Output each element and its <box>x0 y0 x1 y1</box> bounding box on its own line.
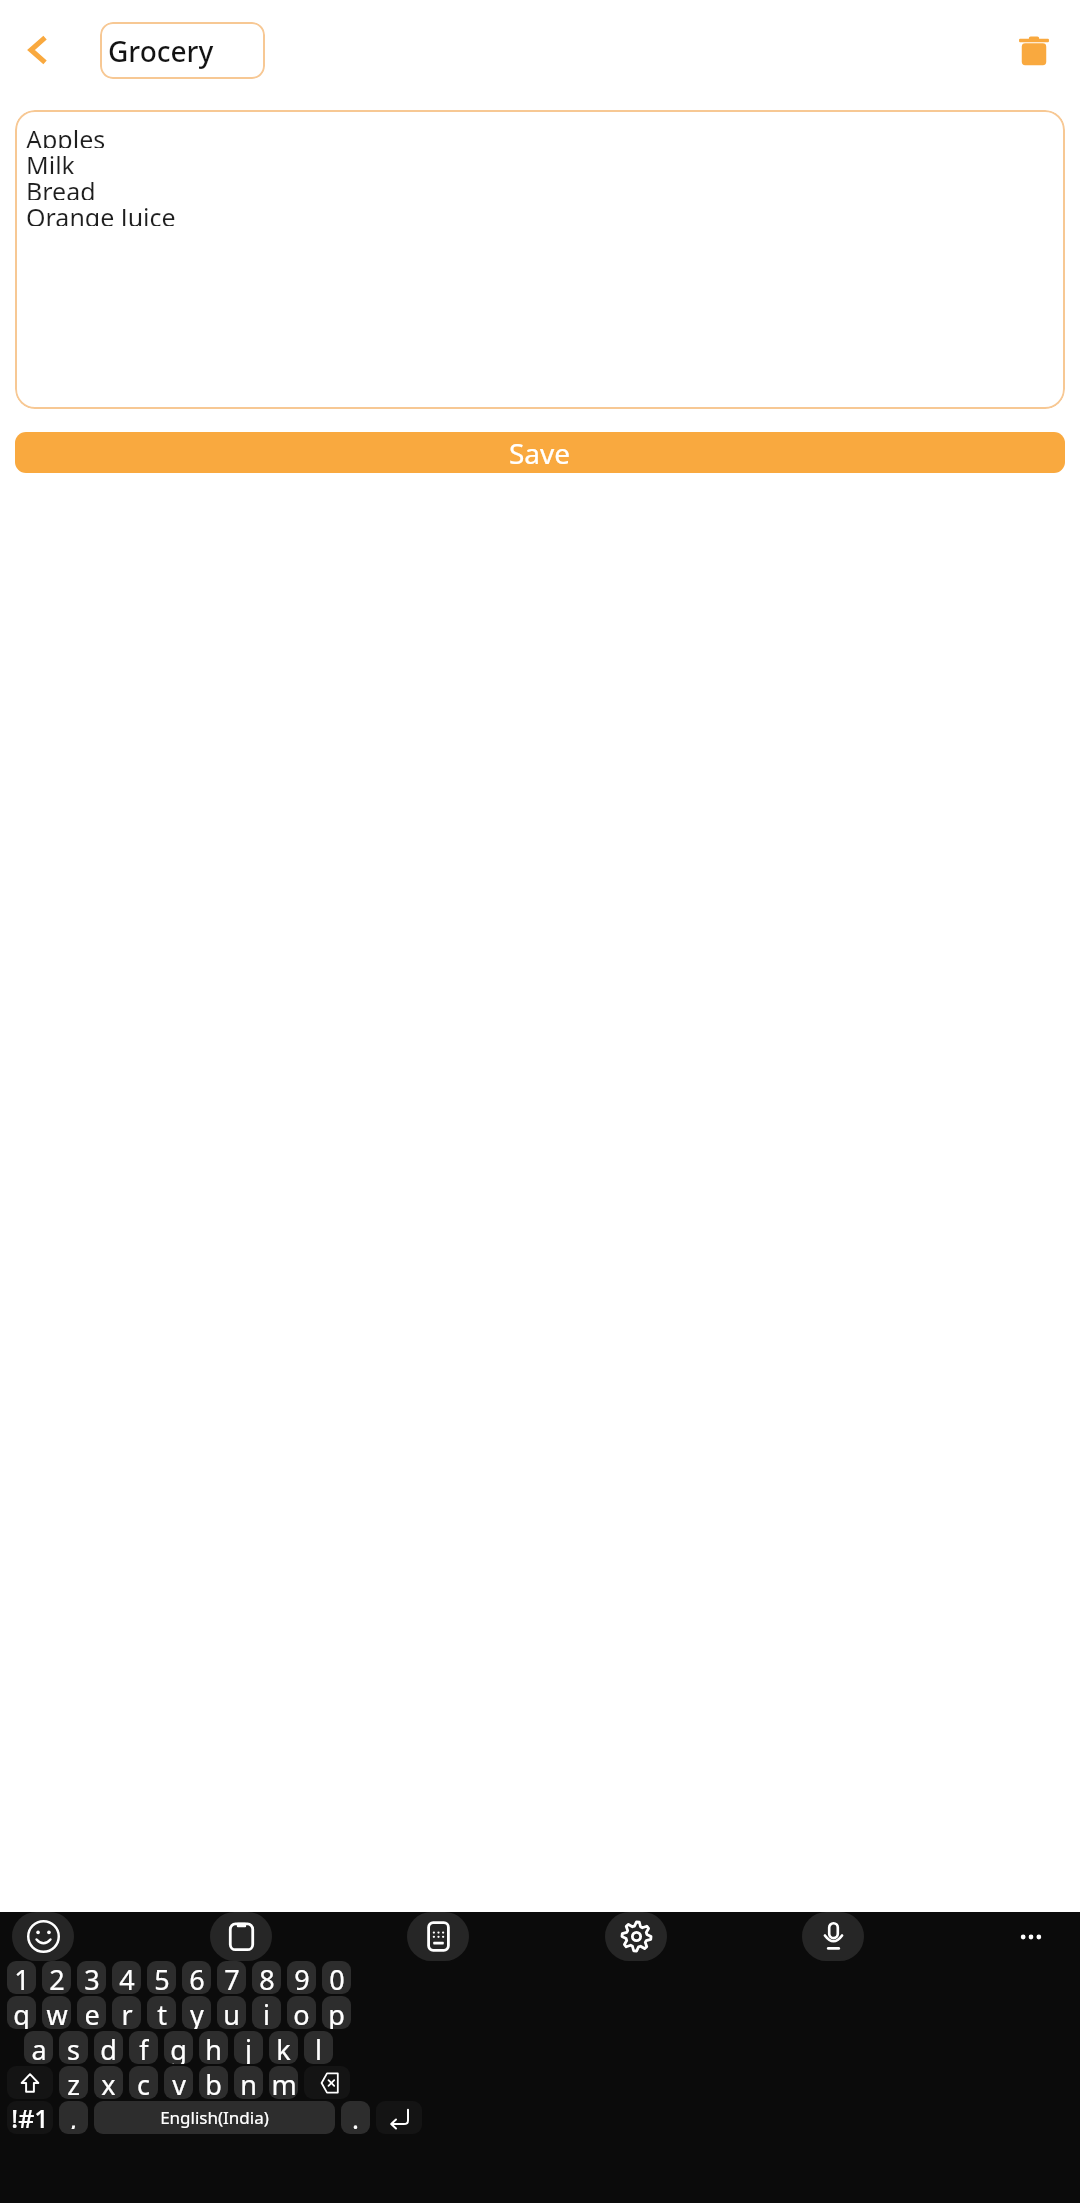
button[interactable]: English(India) <box>94 2101 335 2134</box>
staticText: 2 <box>49 1961 65 1994</box>
staticText: y <box>190 1996 204 2029</box>
button[interactable]: y <box>182 1996 211 2029</box>
staticText: !#1 <box>11 2101 49 2134</box>
staticText: Apples <box>26 122 106 148</box>
button[interactable]: z <box>59 2066 88 2099</box>
staticText: a <box>31 2031 47 2064</box>
staticText: , <box>70 2101 77 2129</box>
staticText: Orange Juice <box>26 200 176 226</box>
staticText: 6 <box>189 1961 205 1994</box>
staticText: 7 <box>224 1961 240 1994</box>
button[interactable]: c <box>129 2066 158 2099</box>
button[interactable]: 8 <box>252 1961 281 1994</box>
staticText: . <box>352 2101 359 2129</box>
button[interactable]: t <box>147 1996 176 2029</box>
staticText: Bread <box>26 174 96 200</box>
staticText: 5 <box>154 1961 170 1994</box>
button[interactable]: 4 <box>112 1961 141 1994</box>
staticText: b <box>205 2066 222 2099</box>
button[interactable]: . <box>341 2101 370 2134</box>
button[interactable]: 0 <box>322 1961 351 1994</box>
staticText: m <box>271 2066 297 2099</box>
button[interactable]: i <box>252 1996 281 2029</box>
staticText: x <box>101 2066 116 2099</box>
button[interactable]: Shift <box>7 2066 53 2099</box>
button[interactable]: e <box>77 1996 106 2029</box>
button[interactable]: h <box>199 2031 228 2064</box>
staticText: w <box>46 1996 68 2029</box>
button[interactable]: x <box>94 2066 123 2099</box>
button[interactable]: Emoji <box>12 1912 74 1961</box>
button[interactable]: Back <box>8 20 68 80</box>
staticText: Milk <box>26 148 75 174</box>
button[interactable]: Settings <box>605 1912 667 1961</box>
button[interactable]: b <box>199 2066 228 2099</box>
button[interactable]: Delete <box>1005 21 1063 79</box>
button[interactable]: u <box>217 1996 246 2029</box>
button[interactable]: 2 <box>42 1961 71 1994</box>
staticText: 8 <box>259 1961 275 1994</box>
button[interactable]: k <box>269 2031 298 2064</box>
staticText: h <box>205 2031 222 2064</box>
button[interactable]: !#1 <box>7 2101 53 2134</box>
button[interactable]: a <box>24 2031 53 2064</box>
staticText: f <box>139 2031 149 2064</box>
button[interactable]: Enter <box>376 2101 422 2134</box>
button[interactable]: 9 <box>287 1961 316 1994</box>
staticText: r <box>121 1996 133 2029</box>
staticText: c <box>137 2066 150 2099</box>
button[interactable]: Voice input <box>802 1912 864 1961</box>
button[interactable]: More options <box>1000 1912 1062 1961</box>
button[interactable]: Save <box>15 432 1065 473</box>
staticText: Save <box>509 434 571 472</box>
button[interactable]: Backspace <box>304 2066 350 2099</box>
staticText: t <box>157 1996 167 2029</box>
button[interactable]: o <box>287 1996 316 2029</box>
staticText: n <box>240 2066 257 2099</box>
button[interactable]: Clipboard <box>210 1912 272 1961</box>
staticText: v <box>172 2066 186 2099</box>
staticText: 1 <box>14 1961 30 1994</box>
button[interactable]: n <box>234 2066 263 2099</box>
staticText: g <box>170 2031 187 2064</box>
button[interactable]: s <box>59 2031 88 2064</box>
staticText: English(India) <box>160 2106 269 2129</box>
staticText: l <box>315 2031 322 2064</box>
button[interactable]: Grocery <box>100 22 265 79</box>
button[interactable]: q <box>7 1996 36 2029</box>
button[interactable]: l <box>304 2031 333 2064</box>
button[interactable]: Apples <box>15 110 1065 409</box>
button[interactable]: m <box>269 2066 298 2099</box>
staticText: 4 <box>119 1961 135 1994</box>
staticText: 0 <box>329 1961 345 1994</box>
staticText: u <box>223 1996 240 2029</box>
staticText: d <box>100 2031 117 2064</box>
button[interactable]: d <box>94 2031 123 2064</box>
button[interactable]: w <box>42 1996 71 2029</box>
staticText: 3 <box>84 1961 100 1994</box>
staticText: j <box>245 2031 252 2064</box>
button[interactable]: Stickers <box>407 1912 469 1961</box>
button[interactable]: , <box>59 2101 88 2134</box>
staticText: s <box>67 2031 80 2064</box>
staticText: i <box>263 1996 270 2029</box>
staticText: o <box>293 1996 310 2029</box>
staticText: Grocery <box>108 32 214 70</box>
button[interactable]: 6 <box>182 1961 211 1994</box>
staticText: q <box>13 1996 30 2029</box>
staticText: e <box>84 1996 100 2029</box>
button[interactable]: 1 <box>7 1961 36 1994</box>
staticText: p <box>328 1996 345 2029</box>
button[interactable]: j <box>234 2031 263 2064</box>
staticText: z <box>67 2066 80 2099</box>
button[interactable]: 7 <box>217 1961 246 1994</box>
button[interactable]: r <box>112 1996 141 2029</box>
button[interactable]: g <box>164 2031 193 2064</box>
button[interactable]: p <box>322 1996 351 2029</box>
button[interactable]: 5 <box>147 1961 176 1994</box>
button[interactable]: 3 <box>77 1961 106 1994</box>
staticText: k <box>276 2031 291 2064</box>
button[interactable]: v <box>164 2066 193 2099</box>
button[interactable]: f <box>129 2031 158 2064</box>
staticText: 9 <box>294 1961 310 1994</box>
